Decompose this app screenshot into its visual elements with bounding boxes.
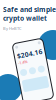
staticText: By HeBTC [3, 26, 22, 31]
staticText: $204.16 [20, 49, 46, 58]
staticText: -1.4% [20, 58, 29, 63]
staticText: Safe and simple [3, 5, 56, 14]
staticText: crypto wallet [3, 14, 47, 23]
